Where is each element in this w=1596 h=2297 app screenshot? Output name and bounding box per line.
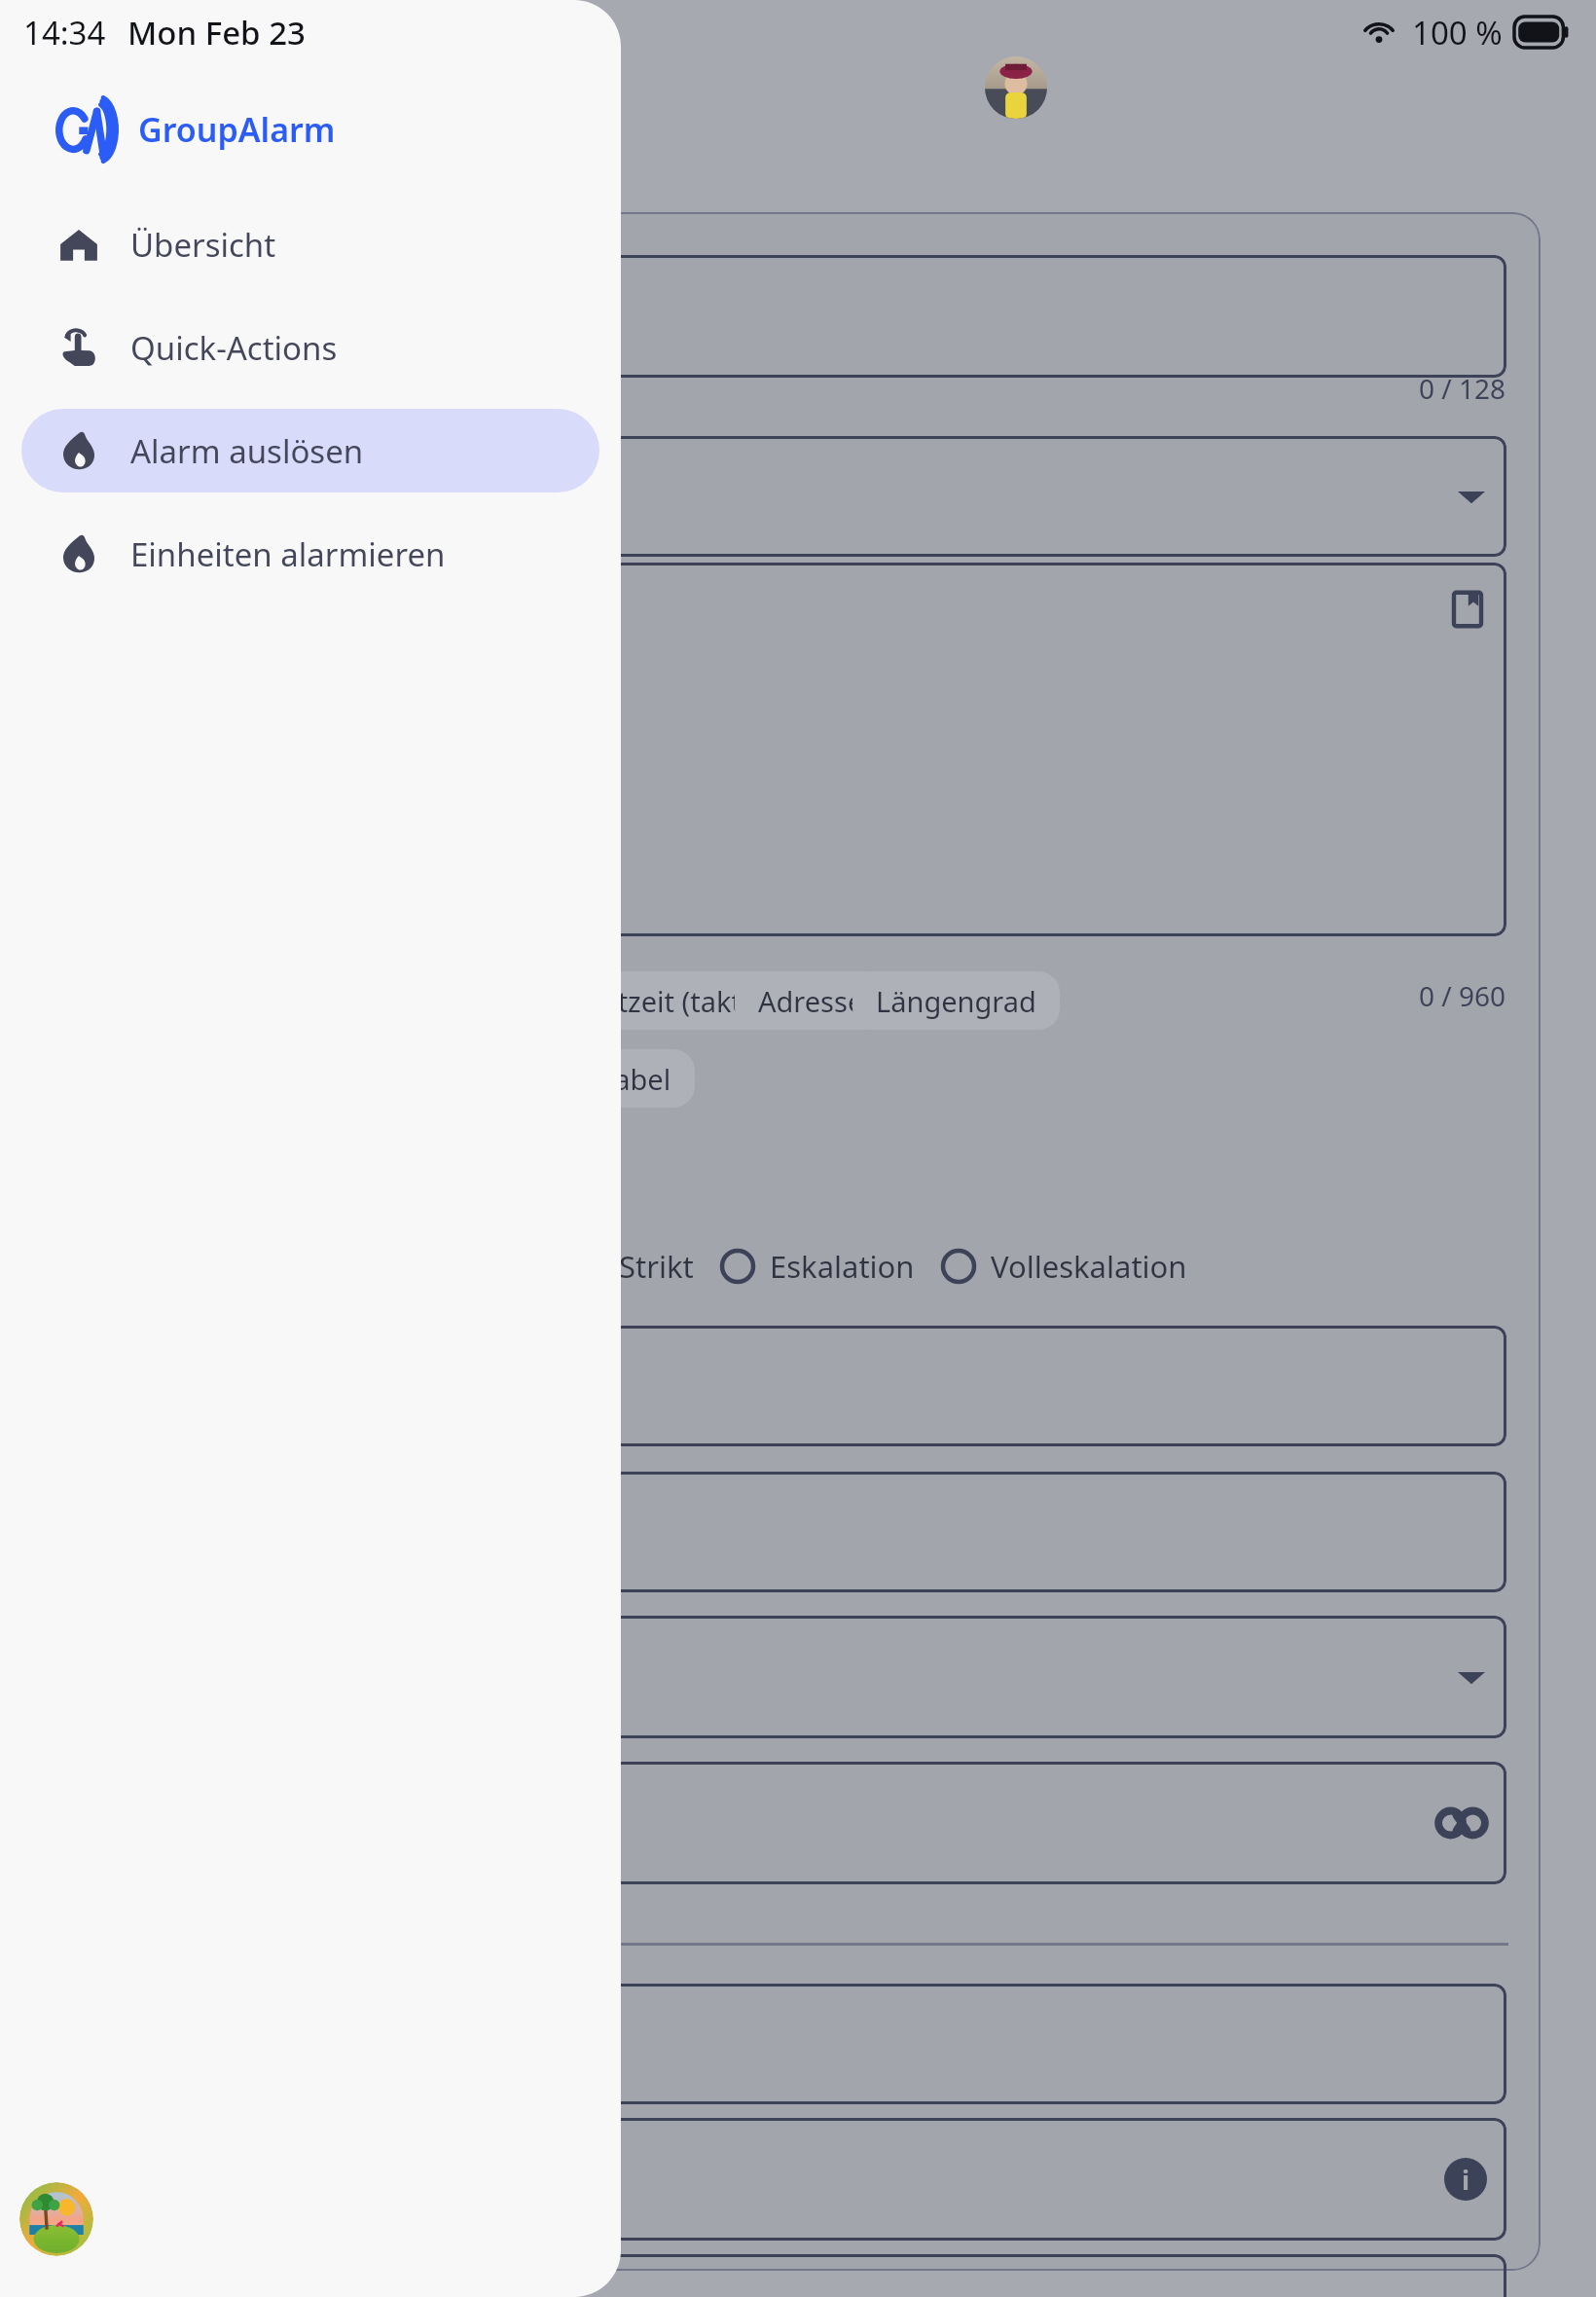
button[interactable]: Quick-Actions (21, 306, 599, 389)
button[interactable]: Eskalation (719, 1246, 915, 1287)
staticText: 14:34 (23, 11, 106, 55)
button[interactable]: Einheiten alarmieren (21, 512, 599, 596)
button[interactable]: Urlaubsmodus (19, 2182, 93, 2256)
button[interactable]: Info (346, 2118, 1506, 2241)
staticText: Alarm auslösen (130, 429, 364, 473)
staticText: 0 / 128 (1419, 370, 1506, 407)
other: Vorlage (1448, 590, 1487, 629)
button[interactable]: Übersicht (21, 202, 599, 286)
staticText: Startzeit (taktisch) (564, 982, 802, 1020)
other: Auswahl öffnen (1458, 1663, 1485, 1691)
staticText: i (1462, 2162, 1470, 2198)
button[interactable]: Alarm auslösen (21, 409, 599, 492)
button[interactable]: Längengrad (852, 971, 1060, 1030)
other: Unbegrenzt (1436, 1798, 1487, 1848)
button[interactable] (346, 1984, 1506, 2104)
staticText: 0 / 960 (1419, 977, 1506, 1014)
staticText: Quick-Actions (130, 326, 338, 370)
button[interactable] (346, 2254, 1506, 2297)
button[interactable] (346, 255, 1506, 378)
staticText: Label (599, 1060, 671, 1098)
button[interactable]: Startzeit (taktisch) (541, 971, 825, 1030)
staticText: Mon Feb 23 (127, 11, 306, 55)
button[interactable]: Startzeit (kurz) (389, 971, 628, 1030)
staticText: 100 % (1412, 11, 1503, 55)
button[interactable]: Auswahl öffnen (346, 1616, 1506, 1738)
button[interactable] (346, 1326, 1506, 1446)
staticText: GroupAlarm (138, 107, 336, 152)
button[interactable]: Info (1444, 2158, 1487, 2201)
staticText: Längengrad (876, 982, 1036, 1020)
staticText: Strikt (619, 1246, 694, 1287)
button[interactable]: Auswahl öffnen (346, 436, 1506, 557)
other: Auswahl öffnen (1458, 483, 1485, 510)
button[interactable]: Adresse (735, 971, 888, 1030)
staticText: Volleskalation (991, 1246, 1187, 1287)
button[interactable]: Vorlage (346, 563, 1506, 936)
button[interactable] (346, 1472, 1506, 1592)
button[interactable]: Unbegrenzt (346, 1762, 1506, 1884)
button[interactable]: Nachname (444, 1049, 635, 1108)
staticText: Übersicht (130, 223, 276, 267)
staticText: Einheiten alarmieren (130, 532, 446, 576)
button[interactable]: Profil (985, 56, 1047, 119)
staticText: Adresse (758, 982, 864, 1020)
staticText: Eskalation (770, 1246, 915, 1287)
button[interactable]: Volleskalation (940, 1246, 1187, 1287)
button[interactable]: Label (576, 1049, 695, 1108)
